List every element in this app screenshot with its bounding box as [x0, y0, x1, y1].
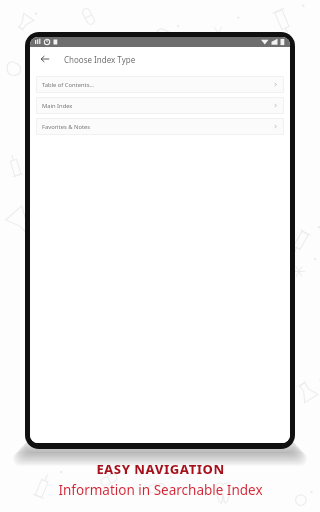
button[interactable]: Back	[37, 51, 53, 67]
button[interactable]: Main Index	[36, 97, 284, 114]
staticText: EASY NAVIGATION	[96, 460, 225, 478]
button[interactable]: Table of Contents...	[36, 76, 284, 93]
staticText: Main Index	[42, 102, 273, 110]
staticText: Information in Searchable Index	[58, 481, 263, 499]
staticText: Choose Index Type	[64, 54, 136, 65]
button[interactable]: Favorites & Notes	[36, 118, 284, 135]
staticText: Table of Contents...	[42, 81, 273, 89]
staticText: Favorites & Notes	[42, 123, 273, 131]
